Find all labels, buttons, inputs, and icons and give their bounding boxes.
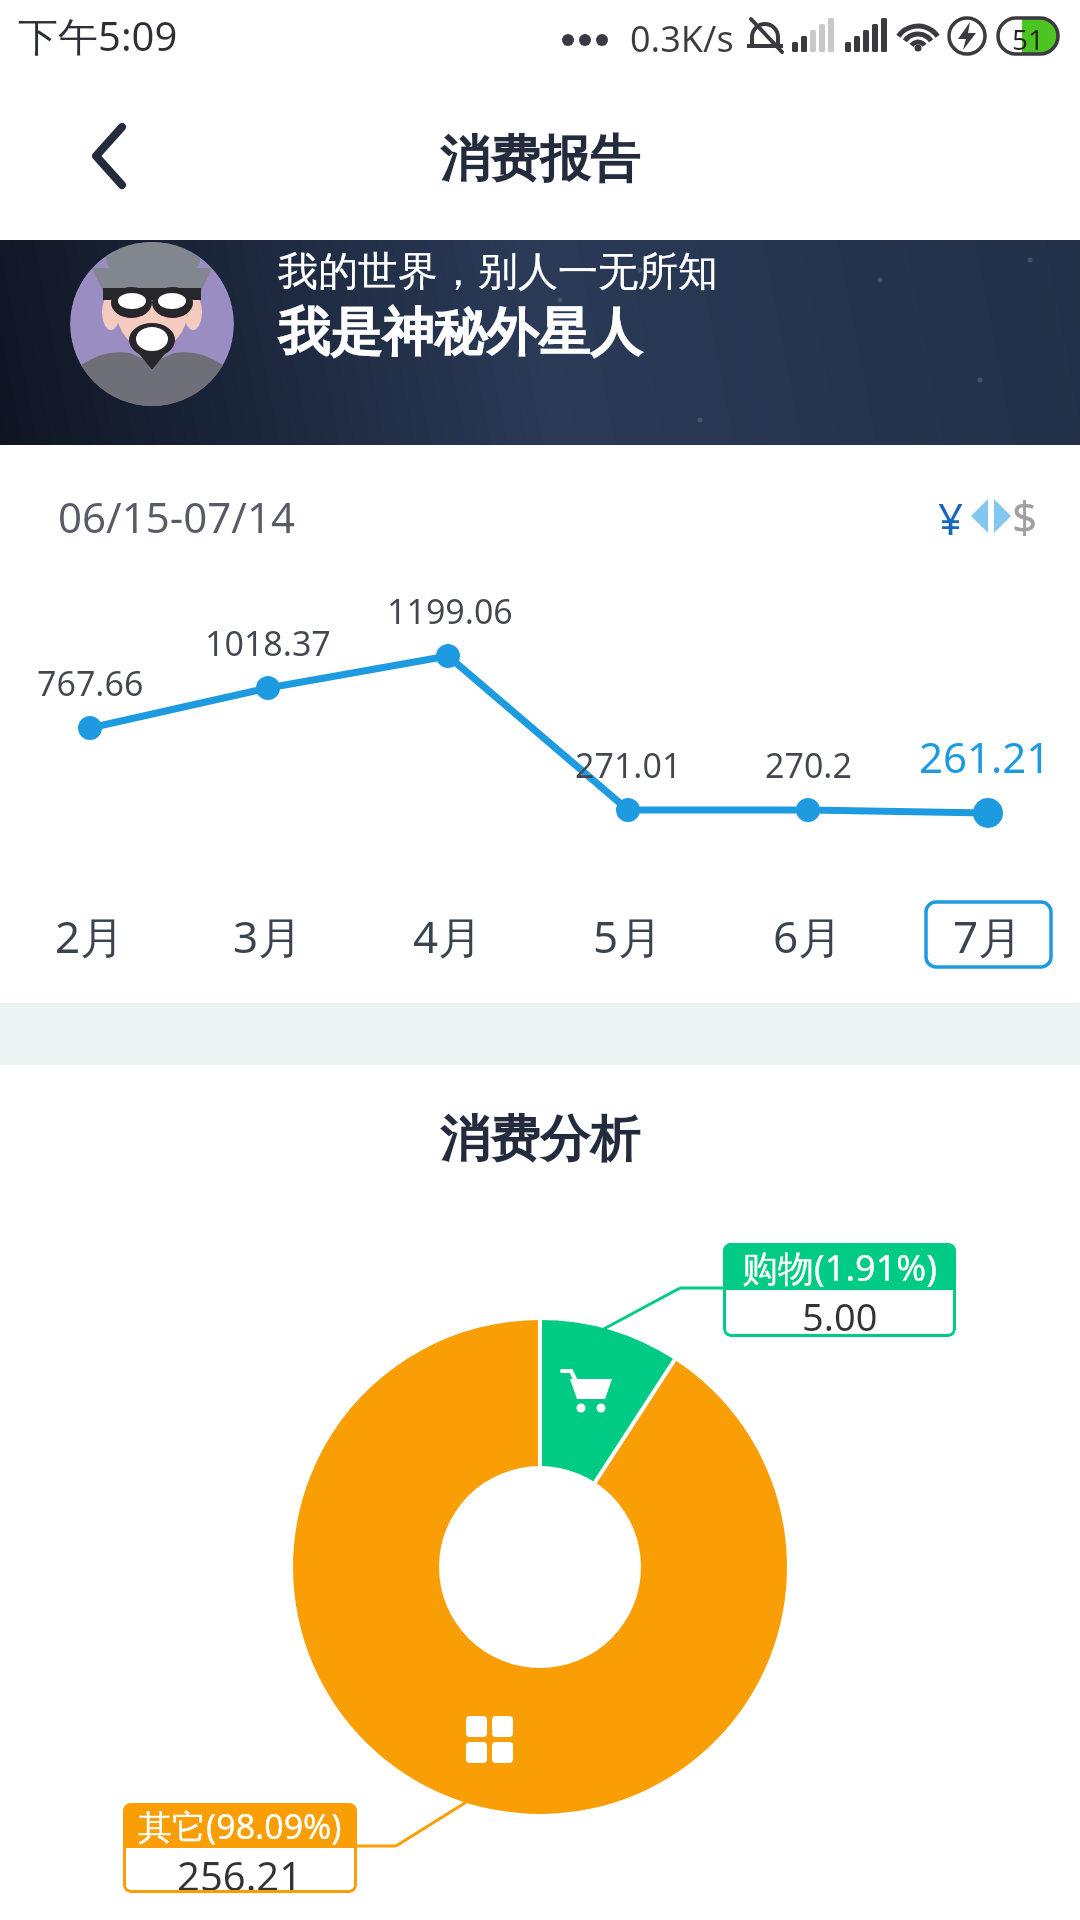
staticText: 下午5:09 (18, 8, 178, 63)
staticText: 0.3K/s (630, 14, 734, 63)
button[interactable] (60, 110, 160, 200)
button[interactable] (0, 240, 1080, 445)
button[interactable]: 购物(1.91%) (723, 1243, 956, 1337)
staticText: 5.00 (802, 1290, 878, 1337)
staticText: 767.66 (37, 660, 144, 706)
staticText: ¥ (938, 488, 964, 548)
staticText: 3月 (233, 906, 303, 966)
staticText: 消费报告 (440, 128, 640, 191)
staticText: 06/15-07/14 (58, 488, 295, 545)
staticText: 6月 (773, 906, 843, 966)
staticText: 256.21 (177, 1848, 303, 1893)
staticText: 4月 (413, 906, 483, 966)
staticText: 261.21 (919, 728, 1051, 785)
staticText: 购物(1.91%) (742, 1243, 937, 1290)
staticText: 7月 (953, 906, 1023, 966)
staticText: 1199.06 (387, 588, 513, 634)
staticText: 1018.37 (205, 620, 331, 666)
button[interactable]: 其它(98.09%) (123, 1803, 357, 1893)
staticText: 消费分析 (440, 1108, 640, 1171)
button[interactable] (920, 478, 1060, 548)
staticText: 我的世界，别人一无所知 (278, 246, 718, 296)
staticText: 2月 (55, 906, 125, 966)
staticText: $ (1012, 486, 1038, 546)
button[interactable] (926, 902, 1051, 967)
staticText: 271.01 (575, 742, 682, 788)
staticText: 51 (1012, 20, 1045, 58)
staticText: 5月 (593, 906, 663, 966)
staticText: 其它(98.09%) (138, 1803, 342, 1848)
staticText: 我是神秘外星人 (278, 300, 642, 366)
staticText: 270.2 (765, 742, 852, 788)
